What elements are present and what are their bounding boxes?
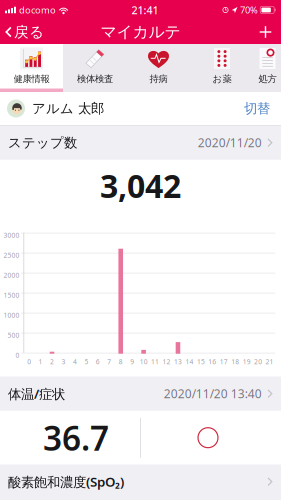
staticText: 16 [208, 357, 216, 366]
staticText: 7 [107, 357, 111, 366]
staticText: 6 [96, 357, 100, 366]
staticText: 36.7 [43, 416, 109, 460]
button[interactable]: 健康情報 [0, 44, 63, 92]
staticText: 17 [220, 357, 228, 366]
staticText: 3 [61, 357, 65, 366]
staticText: 15 [197, 357, 205, 366]
button[interactable]: お薬 [190, 44, 254, 92]
staticText: 酸素飽和濃度(SpO₂) [8, 473, 124, 490]
staticText: 4 [73, 357, 77, 366]
staticText: 70% [240, 4, 258, 16]
staticText: 14 [185, 357, 193, 366]
staticText: 0 [16, 351, 20, 360]
staticText: 3,042 [100, 164, 181, 207]
staticText: 3000 [4, 231, 20, 240]
staticText: 2020/11/20 [198, 135, 262, 151]
button[interactable]: 処方 [254, 44, 281, 92]
staticText: 21 [266, 357, 274, 366]
staticText: 10 [140, 357, 148, 366]
staticText: 戻る [14, 23, 44, 41]
staticText: 8 [119, 357, 123, 366]
staticText: 2500 [4, 251, 20, 260]
staticText: 9 [130, 357, 134, 366]
staticText: 持病 [149, 73, 167, 85]
staticText: お薬 [212, 73, 231, 85]
staticText: 処方 [258, 73, 276, 85]
staticText: 19 [243, 357, 251, 366]
staticText: 2020/11/20 13:40 [164, 386, 262, 402]
staticText: 検体検査 [77, 73, 113, 85]
staticText: 500 [8, 331, 20, 340]
staticText: 切替 [244, 100, 270, 117]
staticText: 12 [162, 357, 170, 366]
button[interactable]: 検体検査 [63, 44, 127, 92]
staticText: 体温/症状 [8, 385, 65, 402]
staticText: docomo [19, 4, 56, 16]
staticText: 20 [254, 357, 262, 366]
button[interactable]: 持病 [127, 44, 190, 92]
button[interactable]: 戻る [0, 20, 52, 44]
staticText: 2000 [4, 271, 20, 280]
staticText: 2 [50, 357, 54, 366]
staticText: ステップ数 [8, 134, 77, 151]
staticText: マイカルテ [100, 22, 180, 42]
button[interactable]: 切替 [242, 95, 272, 122]
staticText: 1000 [4, 311, 20, 320]
staticText: 21:41 [131, 3, 158, 17]
staticText: 1500 [4, 291, 20, 300]
button[interactable]: 体温/症状 [0, 377, 281, 411]
staticText: 5 [84, 357, 88, 366]
button[interactable]: ステップ数 [0, 126, 281, 160]
staticText: アルム 太郎 [32, 100, 104, 117]
staticText: 18 [231, 357, 239, 366]
staticText: 健康情報 [13, 73, 49, 85]
staticText: 0 [27, 357, 31, 366]
staticText: 11 [151, 357, 159, 366]
button[interactable]: 酸素飽和濃度(SpO₂) [0, 465, 281, 499]
staticText: 13 [174, 357, 182, 366]
staticText: 1 [39, 357, 43, 366]
button[interactable]: 追加 [249, 22, 281, 41]
